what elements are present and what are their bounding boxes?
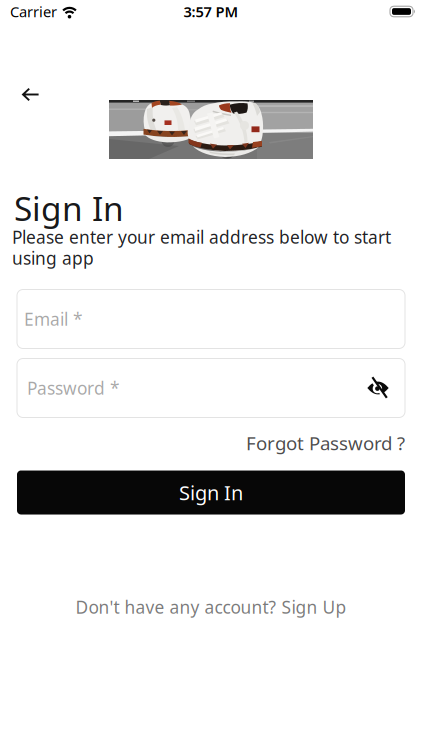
staticText: Please enter your email address below to… [12,225,391,248]
staticText: Don't have any account? Sign Up [75,595,346,618]
staticText: 3:57 PM [183,2,238,21]
button[interactable]: Back [0,21,39,101]
button[interactable]: Forgot Password ? [246,430,405,452]
staticText: Forgot Password ? [246,430,405,455]
staticText: Email * [24,307,83,330]
staticText: Sign In [179,479,243,506]
button[interactable]: Show password [367,377,389,399]
staticText: using app [12,246,94,269]
staticText: Carrier [10,2,57,21]
button[interactable]: Don't have any account? Sign Up [75,595,346,618]
staticText: Sign In [14,186,124,230]
staticText: Password * [27,376,120,399]
button[interactable]: Sign In [17,470,405,514]
